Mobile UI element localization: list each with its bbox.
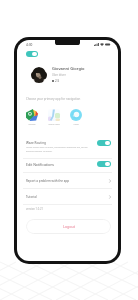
staticText: 4:30 <box>26 43 33 47</box>
staticText: Choose your primary app for navigation <box>26 97 81 101</box>
staticText: Uber driver <box>52 73 66 77</box>
button[interactable]: Apple Maps <box>48 109 60 126</box>
staticText: Waze Routing <box>26 141 46 145</box>
staticText: Giovanni Giorgio <box>52 66 85 71</box>
staticText: Tutorial <box>26 195 37 199</box>
button[interactable]: Waze <box>70 109 82 126</box>
button[interactable]: Switch <box>97 161 111 167</box>
staticText: Apple Maps <box>48 123 60 126</box>
staticText: Logout <box>63 224 75 229</box>
button[interactable]: Profile photo <box>31 67 47 83</box>
staticText: 2.5 <box>55 79 60 83</box>
staticText: Report a problem with the app <box>26 179 70 183</box>
staticText: Waze <box>73 123 79 126</box>
button[interactable]: Edit Notifications <box>17 159 118 173</box>
button[interactable]: Report a problem with the app <box>17 172 118 189</box>
button[interactable]: Waze Routing <box>17 140 118 159</box>
button[interactable]: Logout <box>26 219 111 234</box>
staticText: Google Maps <box>26 123 38 126</box>
button[interactable]: Tutorial <box>17 189 118 204</box>
staticText: version 1.0.21 <box>26 207 43 211</box>
staticText: Edit Notifications <box>26 162 54 167</box>
staticText: Lorem ipsum dolor sit amet, consectetur … <box>26 146 94 152</box>
button[interactable]: Google Maps <box>26 109 38 126</box>
button[interactable]: Switch <box>97 140 111 146</box>
button[interactable]: Go online <box>26 51 38 57</box>
